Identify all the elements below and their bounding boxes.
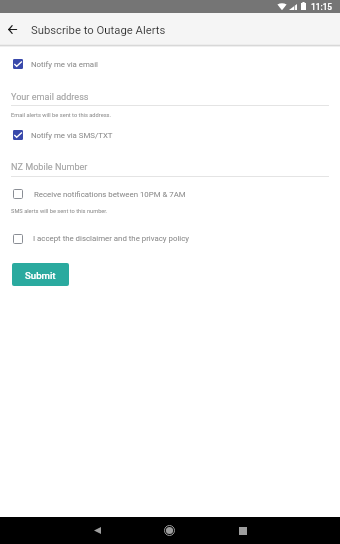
staticText: I accept the disclaimer and the privacy … <box>33 234 190 243</box>
staticText: Email alerts will be sent to this addres… <box>11 112 112 119</box>
staticText: Notify me via SMS/TXT <box>31 131 113 140</box>
staticText: Notify me via email <box>31 60 98 69</box>
button[interactable]: Home <box>158 519 181 542</box>
staticText: SMS alerts will be sent to this number. <box>11 208 108 215</box>
button[interactable]: Back <box>86 519 109 542</box>
staticText: Subscribe to Outage Alerts <box>31 24 166 37</box>
button[interactable]: Checkbox <box>7 183 29 205</box>
button[interactable]: Submit <box>12 263 69 286</box>
staticText: 11:15 <box>311 2 333 12</box>
staticText: NZ Mobile Number <box>11 162 88 173</box>
button[interactable]: Checkbox <box>7 228 29 250</box>
button[interactable]: Checkbox <box>7 53 29 75</box>
button[interactable]: Checkbox <box>7 124 29 146</box>
staticText: Submit <box>25 270 56 281</box>
staticText: Receive notifications between 10PM & 7AM <box>34 190 186 199</box>
button[interactable]: Back <box>4 21 21 38</box>
staticText: Your email address <box>11 92 89 103</box>
button[interactable]: Recent apps <box>231 519 254 542</box>
